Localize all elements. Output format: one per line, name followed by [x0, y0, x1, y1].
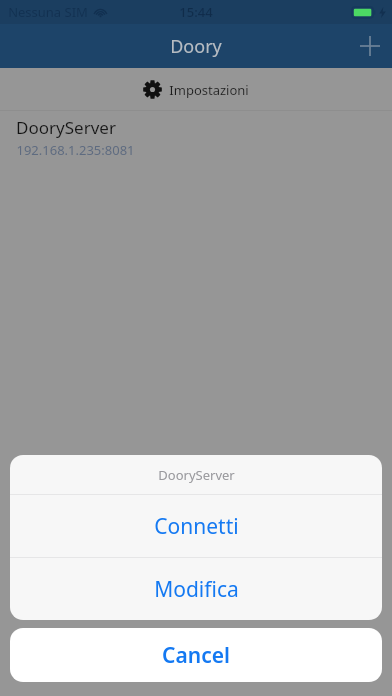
- button[interactable]: Impostazioni: [0, 68, 392, 110]
- staticText: DooryServer: [158, 466, 235, 484]
- staticText: Impostazioni: [169, 81, 249, 99]
- staticText: 192.168.1.235:8081: [16, 141, 135, 159]
- staticText: Cancel: [162, 641, 230, 670]
- staticText: Doory: [170, 34, 222, 59]
- button[interactable]: Cancel: [10, 628, 382, 682]
- button[interactable]: Modifica: [10, 558, 382, 620]
- staticText: Modifica: [154, 575, 239, 604]
- button[interactable]: Add server: [348, 24, 392, 68]
- button[interactable]: Connetti: [10, 495, 382, 557]
- button[interactable]: DooryServer: [0, 111, 392, 160]
- staticText: Nessuna SIM: [8, 3, 88, 21]
- staticText: 15:44: [179, 3, 213, 21]
- staticText: DooryServer: [16, 116, 116, 139]
- staticText: Connetti: [154, 512, 239, 541]
